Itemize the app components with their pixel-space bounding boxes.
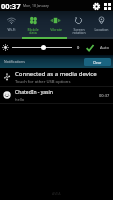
button[interactable]: Mobile data [22, 11, 44, 39]
staticText: Wi-Fi [7, 27, 16, 32]
button[interactable]: Wi-Fi [0, 11, 22, 39]
button[interactable]: Clear [84, 58, 111, 66]
button[interactable]: Quick settings [103, 2, 111, 10]
staticText: Mobile data [27, 27, 39, 35]
staticText: 00:37 [1, 1, 21, 11]
staticText: Screen rotation [72, 27, 86, 35]
button[interactable]: Location [90, 11, 113, 39]
button[interactable]: Screen rotation [67, 11, 90, 39]
staticText: Touch for other USB options [15, 79, 71, 85]
staticText: Vibrate [50, 27, 62, 32]
button[interactable]: Connected as a media device [0, 68, 113, 86]
staticText: AVEA [52, 191, 61, 196]
staticText: hello [15, 97, 25, 102]
staticText: Auto [100, 45, 109, 50]
button[interactable]: Vibrate [44, 11, 67, 39]
button[interactable] [85, 43, 94, 52]
staticText: Location [94, 27, 109, 32]
staticText: Connected as a media device [15, 70, 97, 78]
staticText: Notifications [4, 59, 25, 64]
staticText: ChatedIn - yasin [15, 89, 53, 96]
button[interactable]: ChatedIn - yasin [0, 87, 113, 103]
staticText: 00:37 [99, 93, 110, 98]
staticText: Clear [93, 60, 102, 65]
button[interactable]: Settings [92, 2, 100, 10]
staticText: Mon, 18 January [23, 3, 49, 8]
staticText: 0 [77, 45, 80, 50]
